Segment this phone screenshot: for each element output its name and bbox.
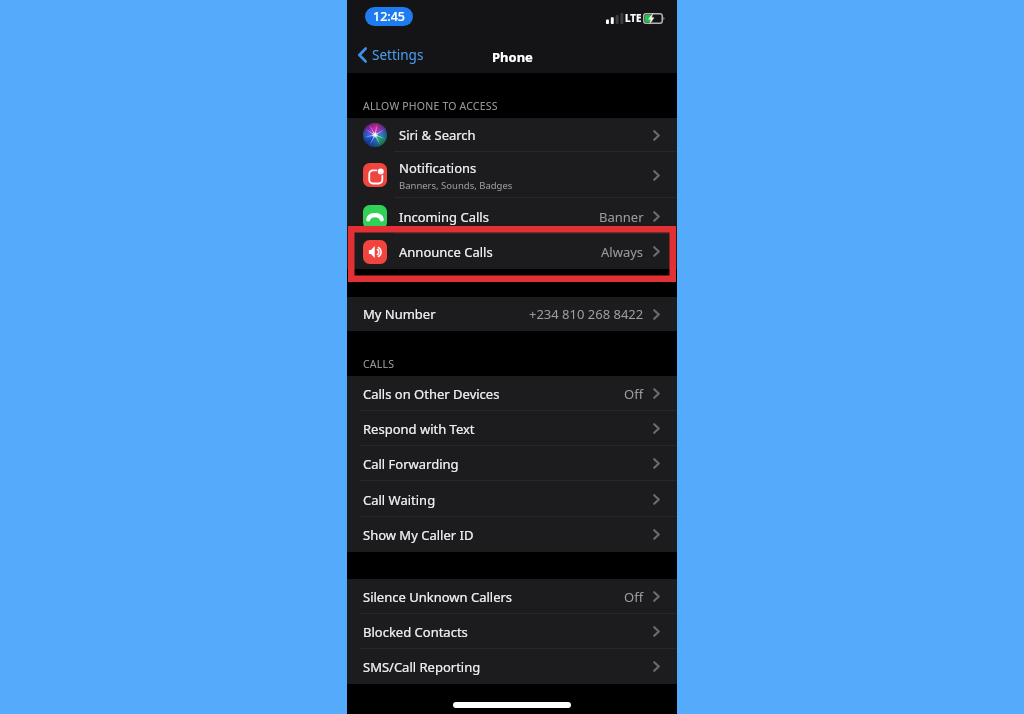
staticText: Blocked Contacts — [363, 623, 468, 641]
button[interactable]: Announce Calls — [347, 234, 677, 269]
staticText: Announce Calls — [399, 243, 493, 261]
staticText: +234 810 268 8422 — [529, 305, 644, 323]
staticText: Silence Unknown Callers — [363, 588, 513, 606]
button[interactable]: Respond with Text — [347, 411, 677, 446]
staticText: LTE — [625, 12, 642, 25]
button[interactable]: Calls on Other Devices — [347, 376, 677, 411]
staticText: SMS/Call Reporting — [363, 658, 481, 676]
staticText: Settings — [372, 46, 424, 64]
staticText: 12:45 — [373, 8, 406, 25]
button[interactable]: Call Waiting — [347, 482, 677, 517]
button[interactable]: Back — [355, 43, 430, 67]
staticText: Off — [624, 385, 644, 403]
staticText: CALLS — [363, 357, 395, 371]
staticText: Show My Caller ID — [363, 526, 474, 544]
other: Back — [358, 47, 367, 63]
button[interactable]: SMS/Call Reporting — [347, 649, 677, 684]
staticText: Off — [624, 588, 644, 606]
staticText: Always — [601, 243, 644, 261]
button[interactable]: Call Forwarding — [347, 446, 677, 481]
staticText: Notifications — [399, 159, 477, 177]
staticText: Call Waiting — [363, 491, 436, 509]
button[interactable]: Incoming Calls — [347, 199, 677, 234]
staticText: Siri & Search — [399, 126, 476, 144]
button[interactable]: Siri & Search — [347, 118, 677, 152]
button[interactable]: Blocked Contacts — [347, 614, 677, 649]
staticText: Call Forwarding — [363, 455, 459, 473]
staticText: Respond with Text — [363, 420, 475, 438]
staticText: Phone — [492, 48, 533, 66]
staticText: My Number — [363, 305, 436, 323]
button[interactable]: Silence Unknown Callers — [347, 579, 677, 614]
button[interactable]: Show My Caller ID — [347, 517, 677, 552]
staticText: Incoming Calls — [399, 208, 489, 226]
staticText: ALLOW PHONE TO ACCESS — [363, 99, 498, 113]
staticText: Calls on Other Devices — [363, 385, 500, 403]
button[interactable]: My Number — [347, 297, 677, 331]
button[interactable]: Notifications — [347, 152, 677, 198]
staticText: Banner — [599, 208, 644, 226]
staticText: Banners, Sounds, Badges — [399, 179, 513, 192]
